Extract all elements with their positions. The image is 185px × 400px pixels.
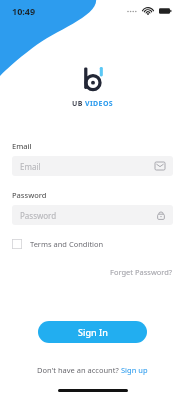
staticText: Sign In	[78, 326, 108, 338]
staticText: Email	[20, 161, 41, 172]
staticText: Password	[20, 210, 57, 221]
staticText: Terms and Condition	[30, 239, 104, 249]
staticText: Password	[12, 190, 47, 200]
other: Email	[155, 162, 165, 170]
other: Password	[157, 210, 165, 220]
staticText: UB VIDEOS	[72, 99, 114, 109]
button[interactable]: Sign up	[121, 365, 148, 375]
button[interactable]: Terms and Condition	[12, 239, 173, 249]
button[interactable]: Password	[12, 205, 173, 225]
button[interactable]: Forget Password?	[110, 267, 173, 277]
staticText: Don't have an account?	[37, 365, 121, 375]
staticText: Email	[12, 141, 32, 151]
button[interactable]: Email	[12, 156, 173, 176]
staticText: 10:49	[12, 5, 36, 17]
button[interactable]: Sign In	[38, 321, 147, 343]
